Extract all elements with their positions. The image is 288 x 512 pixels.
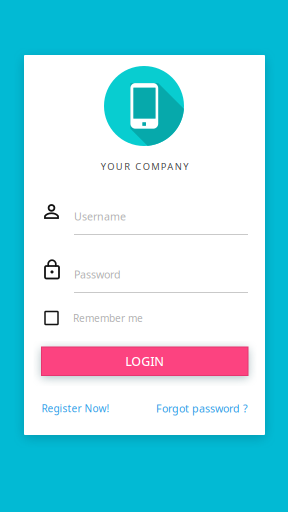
- button[interactable]: LOGIN: [41, 347, 248, 375]
- staticText: Forgot password ?: [156, 401, 248, 415]
- button[interactable]: Remember me: [45, 311, 248, 325]
- staticText: Remember me: [73, 311, 143, 325]
- staticText: YOUR COMPANY: [101, 160, 188, 173]
- staticText: Password: [74, 267, 121, 281]
- staticText: Username: [74, 209, 126, 223]
- button[interactable]: Register Now!: [41, 401, 109, 415]
- staticText: Register Now!: [41, 401, 109, 415]
- staticText: LOGIN: [125, 353, 164, 370]
- button[interactable]: Forgot password ?: [148, 401, 248, 415]
